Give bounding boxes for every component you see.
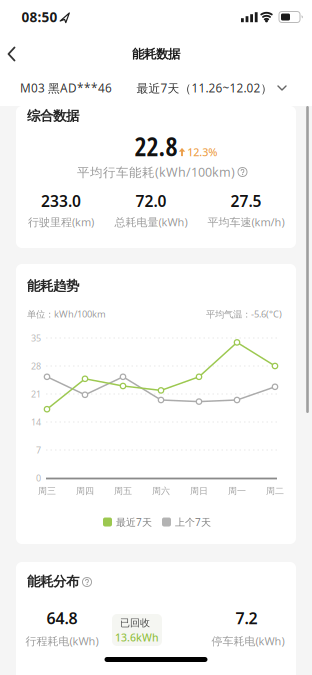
staticText: 平均行车能耗(kWh/100km) — [77, 163, 235, 180]
staticText: 总耗电量(kWh) — [114, 214, 187, 229]
staticText: 27.5 — [230, 190, 261, 212]
staticText: 72.0 — [135, 190, 166, 212]
staticText: 平均车速(km/h) — [207, 214, 284, 229]
staticText: 64.8 — [46, 607, 77, 629]
staticText: 周三 — [38, 485, 56, 497]
button[interactable]: M03 黑AD***46 — [20, 74, 160, 102]
staticText: M03 黑AD***46 — [20, 80, 112, 96]
staticText: 能耗趋势 — [27, 278, 79, 294]
staticText: 停车耗电(kWh) — [211, 633, 284, 648]
staticText: 上个7天 — [175, 515, 211, 529]
staticText: 0 — [36, 472, 41, 484]
staticText: 22.8 — [134, 128, 177, 164]
staticText: 周一 — [228, 485, 246, 497]
staticText: 能耗分布 — [27, 573, 79, 590]
staticText: 最近7天 — [116, 515, 152, 529]
staticText: 能耗数据 — [132, 46, 180, 62]
staticText: 最近7天（11.26~12.02） — [136, 80, 272, 96]
staticText: 综合数据 — [27, 108, 79, 124]
staticText: 行程耗电(kWh) — [25, 633, 98, 648]
staticText: 已回收 — [120, 617, 150, 629]
staticText: 14 — [31, 416, 41, 428]
staticText: 平均气温：-5.6(°C) — [206, 308, 282, 320]
staticText: 08:50 — [21, 8, 57, 26]
staticText: 12.3% — [187, 145, 217, 159]
staticText: 周二 — [266, 485, 284, 497]
staticText: 233.0 — [41, 190, 81, 212]
staticText: 21 — [31, 388, 41, 400]
staticText: 周日 — [190, 485, 208, 497]
staticText: 周六 — [152, 485, 170, 497]
staticText: 周四 — [76, 485, 94, 497]
staticText: 行驶里程(km) — [28, 214, 94, 229]
button[interactable]: 说明 — [238, 167, 247, 176]
staticText: 28 — [31, 360, 41, 372]
staticText: 7 — [36, 444, 41, 456]
staticText: 单位：kWh/100km — [27, 308, 106, 320]
button[interactable]: Back — [0, 42, 44, 66]
staticText: 13.6kWh — [115, 630, 159, 645]
staticText: 周五 — [114, 485, 132, 497]
staticText: 35 — [31, 332, 41, 344]
button[interactable]: 最近7天（11.26~12.02） — [136, 74, 286, 102]
button[interactable]: 说明 — [82, 577, 91, 586]
staticText: 7.2 — [235, 607, 257, 629]
